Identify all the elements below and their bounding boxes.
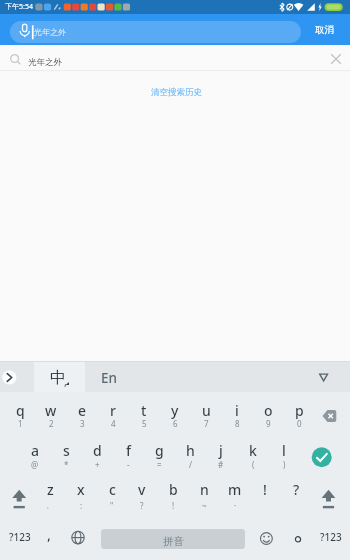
button[interactable]: r <box>98 392 128 433</box>
staticText: 拼音 <box>163 535 184 548</box>
staticText: u <box>202 401 211 420</box>
staticText: 3 <box>80 418 85 429</box>
button[interactable] <box>314 476 350 518</box>
staticText: k <box>249 441 257 460</box>
staticText: q <box>16 401 25 420</box>
staticText: e <box>78 401 87 420</box>
staticText: ) <box>283 459 286 470</box>
staticText: g <box>155 441 164 460</box>
staticText: - <box>127 459 130 470</box>
staticText: 5 <box>142 418 147 429</box>
staticText: 4 <box>111 418 116 429</box>
staticText: w <box>45 401 57 420</box>
button[interactable]: t <box>129 392 159 433</box>
staticText: : <box>80 500 83 511</box>
staticText: ?123 <box>9 530 31 544</box>
staticText: m <box>228 480 242 499</box>
staticText: p <box>295 401 304 420</box>
button[interactable]: v <box>127 474 157 516</box>
staticText: c <box>109 480 116 499</box>
button[interactable] <box>0 46 350 70</box>
button[interactable] <box>302 434 344 476</box>
button[interactable] <box>101 529 245 549</box>
button[interactable]: o <box>253 392 283 433</box>
button[interactable]: y <box>160 392 190 433</box>
staticText: a <box>31 441 40 460</box>
staticText: ? <box>140 500 144 511</box>
staticText: / <box>189 459 192 470</box>
button[interactable] <box>10 21 301 43</box>
button[interactable] <box>64 518 94 560</box>
staticText: l <box>282 441 286 460</box>
button[interactable]: g <box>144 433 174 474</box>
button[interactable]: j <box>206 433 236 474</box>
button[interactable] <box>252 518 282 560</box>
staticText: · <box>234 500 237 511</box>
button[interactable]: ! <box>250 474 280 516</box>
staticText: ( <box>252 459 255 470</box>
staticText: , <box>47 525 51 544</box>
button[interactable]: e <box>67 392 97 433</box>
button[interactable]: ? <box>281 474 311 516</box>
button[interactable]: En <box>91 363 127 393</box>
staticText: 光年之外 <box>28 57 62 68</box>
button[interactable]: f <box>113 433 143 474</box>
button[interactable] <box>326 49 346 69</box>
button[interactable] <box>0 476 33 518</box>
button[interactable]: l <box>269 433 299 474</box>
button[interactable]: b <box>158 474 188 516</box>
button[interactable]: n <box>189 474 219 516</box>
staticText: f <box>126 441 131 460</box>
staticText: + <box>95 459 100 470</box>
staticText: h <box>186 441 195 460</box>
staticText: En <box>101 369 117 387</box>
button[interactable] <box>300 362 340 392</box>
staticText: 光年之外 <box>34 27 66 37</box>
button[interactable]: k <box>238 433 268 474</box>
staticText: 6 <box>173 418 178 429</box>
button[interactable]: , <box>36 513 62 555</box>
button[interactable]: w <box>36 392 66 433</box>
button[interactable]: u <box>191 392 221 433</box>
button[interactable] <box>0 362 34 392</box>
staticText: 1 <box>18 418 23 429</box>
button[interactable]: m <box>220 474 250 516</box>
button[interactable]: q <box>5 392 35 433</box>
staticText: z <box>47 480 54 499</box>
staticText: ! <box>172 500 175 511</box>
button[interactable]: c <box>97 474 127 516</box>
staticText: # <box>218 459 224 470</box>
staticText: t <box>141 401 147 420</box>
button[interactable]: a <box>20 433 50 474</box>
staticText: 下午5:54 <box>5 2 33 12</box>
button[interactable] <box>311 392 350 434</box>
staticText: ?123 <box>320 530 342 544</box>
button[interactable]: z <box>35 474 65 516</box>
button[interactable]: 取消 <box>302 17 346 43</box>
staticText: * <box>64 459 69 470</box>
staticText: 7 <box>204 418 209 429</box>
staticText: i <box>235 401 239 420</box>
button[interactable] <box>284 518 310 560</box>
button[interactable]: x <box>66 474 96 516</box>
staticText: 2 <box>49 418 54 429</box>
staticText: ! <box>263 480 267 499</box>
button[interactable]: h <box>175 433 205 474</box>
staticText: @ <box>31 459 39 470</box>
button[interactable]: p <box>284 392 314 433</box>
button[interactable]: s <box>51 433 81 474</box>
staticText: j <box>219 441 223 460</box>
staticText: 0 <box>297 418 302 429</box>
staticText: = <box>157 459 162 470</box>
staticText: 、 <box>46 500 54 510</box>
staticText: 中 <box>50 368 66 388</box>
button[interactable]: 清空搜索历史 <box>121 81 231 103</box>
staticText: y <box>171 401 179 420</box>
button[interactable]: d <box>82 433 112 474</box>
button[interactable]: ?123 <box>2 516 38 558</box>
button[interactable] <box>34 362 85 392</box>
staticText: b <box>169 480 178 499</box>
staticText: 取消 <box>315 24 334 36</box>
button[interactable]: ?123 <box>312 516 350 558</box>
button[interactable]: i <box>222 392 252 433</box>
